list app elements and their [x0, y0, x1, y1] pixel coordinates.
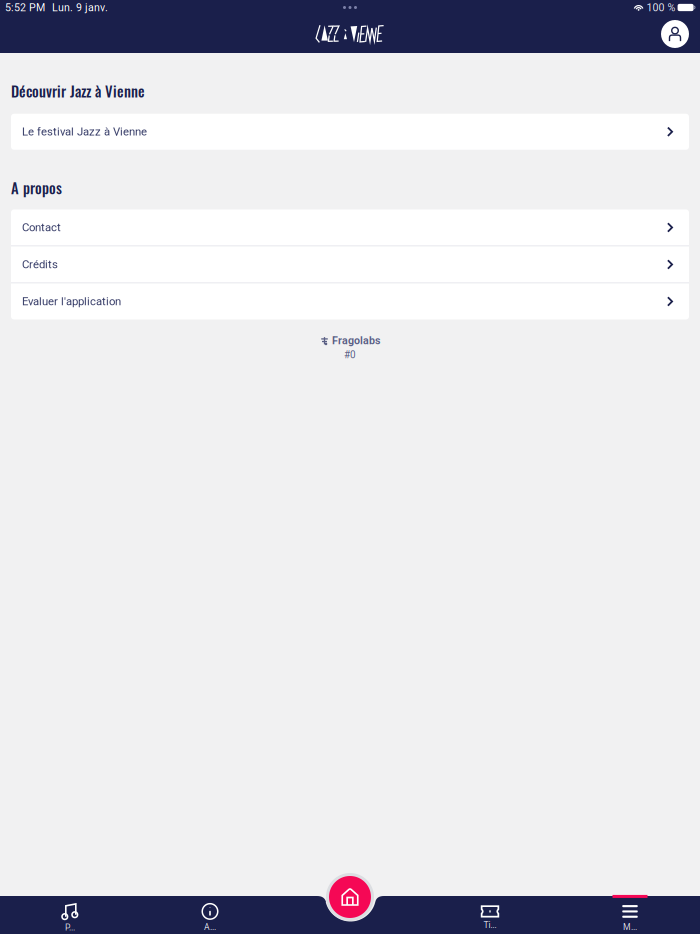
- button[interactable]: Ti...: [420, 896, 560, 934]
- staticText: Lun. 9 janv.: [52, 1, 108, 14]
- staticText: Découvrir Jazz à Vienne: [11, 80, 145, 102]
- button[interactable]: Profile: [661, 20, 689, 48]
- button[interactable]: A...: [140, 896, 280, 934]
- staticText: A...: [204, 922, 216, 932]
- staticText: M...: [623, 922, 637, 932]
- staticText: #0: [344, 349, 356, 361]
- button[interactable]: Crédits: [11, 246, 689, 282]
- staticText: P...: [65, 922, 75, 933]
- staticText: Crédits: [22, 258, 58, 271]
- button[interactable]: Contact: [11, 209, 689, 245]
- button[interactable]: M...: [560, 896, 700, 934]
- staticText: Fragolabs: [332, 334, 380, 347]
- button[interactable]: Home: [326, 873, 374, 921]
- staticText: 5:52 PM: [5, 1, 45, 14]
- staticText: A propos: [11, 177, 62, 198]
- staticText: Ti...: [483, 920, 496, 930]
- staticText: 100 %: [647, 1, 676, 14]
- button[interactable]: P...: [0, 896, 140, 934]
- staticText: Le festival Jazz à Vienne: [22, 125, 147, 138]
- button[interactable]: Evaluer l'application: [11, 283, 689, 319]
- staticText: Contact: [22, 221, 61, 234]
- staticText: Evaluer l'application: [22, 295, 121, 308]
- button[interactable]: Le festival Jazz à Vienne: [11, 114, 689, 150]
